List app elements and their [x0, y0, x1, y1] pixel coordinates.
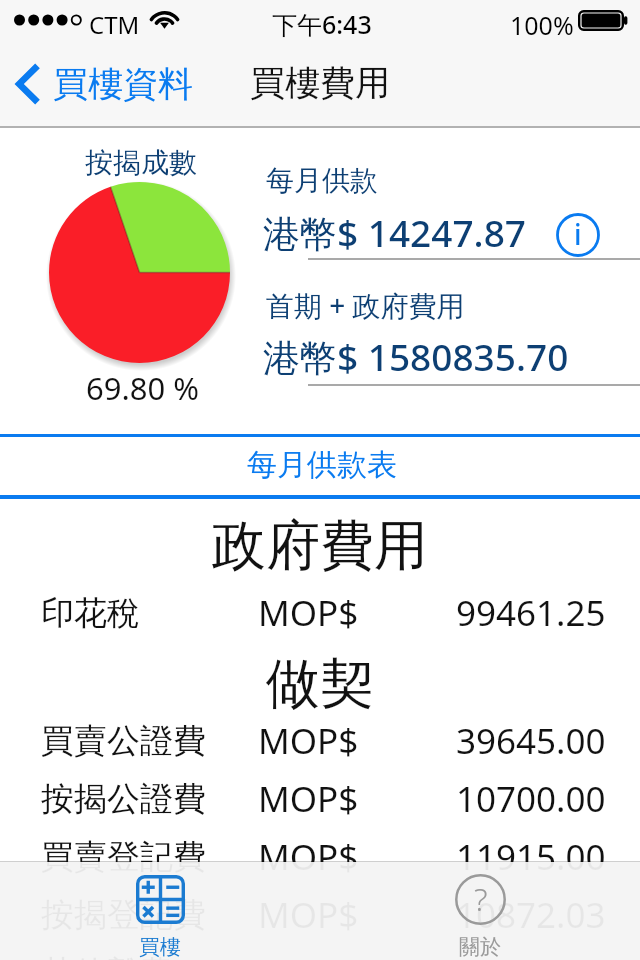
staticText: 39645.00	[456, 717, 606, 765]
staticText: 10700.00	[456, 775, 606, 823]
button[interactable]: 關於	[320, 861, 640, 960]
staticText: MOP$	[258, 589, 359, 637]
staticText: 按揭公證費	[41, 778, 206, 820]
staticText: MOP$	[258, 891, 359, 939]
button[interactable]: 其他雜費	[0, 947, 640, 960]
button[interactable]: 印花稅	[0, 587, 640, 639]
staticText: 下午6:43	[272, 7, 372, 41]
staticText: 關於	[459, 934, 501, 960]
button[interactable]: 買賣登記費	[0, 831, 640, 883]
staticText: 10872.03	[456, 891, 606, 939]
button[interactable]: 按揭公證費	[0, 773, 640, 825]
button[interactable]: 買樓	[0, 861, 320, 960]
button[interactable]: 按揭登記費	[0, 889, 640, 941]
staticText: 按揭成數	[85, 145, 197, 180]
staticText: MOP$	[258, 717, 359, 765]
button[interactable]: 買賣公證費	[0, 715, 640, 767]
staticText: 按揭登記費	[41, 894, 206, 936]
staticText: 做契	[266, 650, 374, 710]
staticText: MOP$	[258, 833, 359, 881]
staticText: 買賣公證費	[41, 720, 206, 762]
staticText: 每月供款表	[247, 446, 397, 484]
staticText: 政府費用	[212, 512, 428, 572]
staticText: CTM	[89, 8, 140, 41]
button[interactable]: Back	[0, 54, 203, 114]
staticText: 買樓	[139, 934, 181, 960]
staticText: 每月供款	[266, 163, 378, 198]
staticText: 買樓資料	[53, 62, 193, 106]
staticText: ?	[474, 877, 488, 921]
staticText: 首期 + 政府費用	[266, 286, 465, 324]
staticText: 買賣登記費	[41, 836, 206, 878]
staticText: i	[574, 215, 582, 253]
staticText: 買樓費用	[250, 61, 390, 105]
button[interactable]: Info	[555, 212, 601, 258]
staticText: MOP$	[258, 775, 359, 823]
staticText: 港幣$ 1580835.70	[263, 331, 569, 382]
staticText: 港幣$ 14247.87	[263, 207, 526, 258]
staticText: 69.80 %	[86, 367, 200, 409]
staticText: 2500.00	[476, 949, 606, 960]
staticText: 其他雜費	[41, 952, 173, 960]
staticText: 99461.25	[456, 589, 606, 637]
staticText: 印花稅	[41, 592, 140, 634]
staticText: 11915.00	[456, 833, 606, 881]
button[interactable]: 每月供款表	[0, 434, 640, 499]
staticText: 100%	[510, 8, 574, 42]
